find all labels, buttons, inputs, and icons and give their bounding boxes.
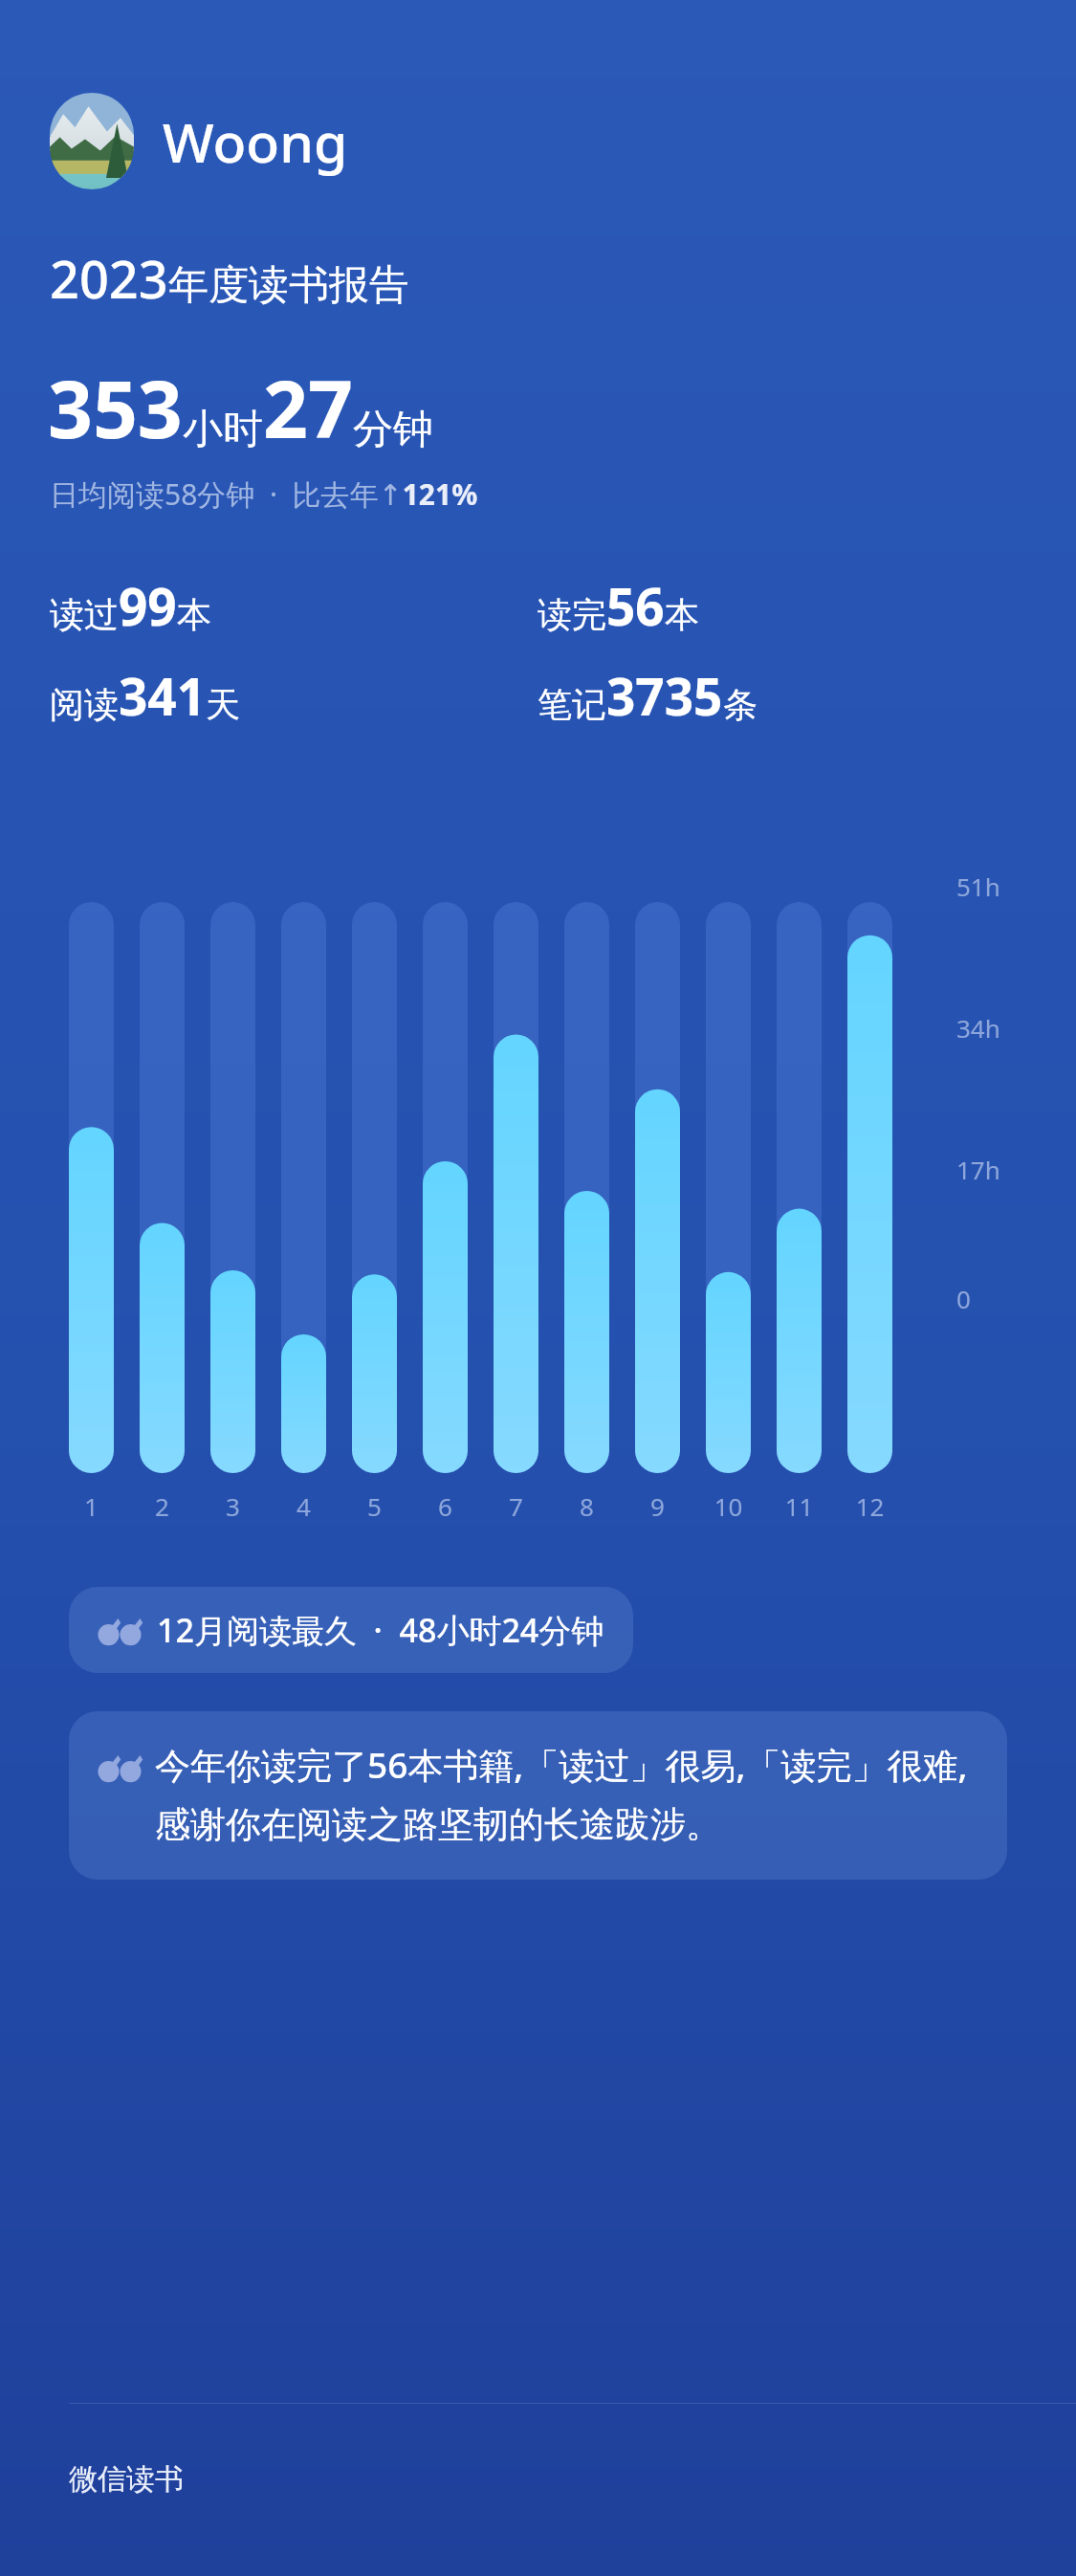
button[interactable]: 今年你读完了56本书籍,「读过」很易,「读完」很难,感谢你在阅读之路坚韧的长途跋… — [69, 1711, 1007, 1880]
staticText: 今年你读完了56本书籍,「读过」很易,「读完」很难,感谢你在阅读之路坚韧的长途跋… — [155, 1740, 984, 1847]
staticText: 3735 — [606, 661, 723, 730]
staticText: 微信读书 — [69, 2461, 184, 2498]
staticText: 99 — [119, 571, 177, 640]
button[interactable]: Profile photo — [50, 93, 348, 189]
staticText: 27 — [263, 354, 353, 461]
staticText: 12月阅读最久 · 48小时24分钟 — [157, 1608, 604, 1652]
staticText: 3 — [210, 1489, 255, 1523]
staticText: 笔记 — [538, 683, 606, 726]
button[interactable]: 读完 — [538, 571, 699, 640]
staticText: 353 — [48, 354, 183, 461]
staticText: 9 — [635, 1489, 680, 1523]
staticText: 本 — [665, 593, 699, 636]
button[interactable]: 阅读 — [50, 661, 240, 730]
button[interactable]: 12月阅读最久 · 48小时24分钟 — [69, 1587, 633, 1673]
staticText: 56 — [606, 571, 665, 640]
staticText: 小时 — [183, 405, 263, 455]
staticText: 2 — [140, 1489, 185, 1523]
staticText: 341 — [119, 661, 206, 730]
staticText: 6 — [423, 1489, 468, 1523]
staticText: 17h — [956, 1153, 1000, 1186]
staticText: 4 — [281, 1489, 326, 1523]
staticText: 本 — [177, 593, 211, 636]
button[interactable]: 笔记 — [538, 661, 758, 730]
staticText: 2023 — [50, 243, 168, 314]
staticText: 年度读书报告 — [168, 260, 409, 311]
staticText: 1 — [69, 1489, 114, 1523]
staticText: 51h — [956, 870, 1000, 903]
other: Profile photo — [50, 93, 134, 189]
staticText: 天 — [206, 683, 240, 726]
staticText: 分钟 — [353, 405, 433, 455]
staticText: 条 — [723, 683, 758, 726]
staticText: Woong — [163, 104, 348, 179]
staticText: 读完 — [538, 593, 606, 636]
staticText: 11 — [777, 1489, 822, 1523]
staticText: 7 — [494, 1489, 538, 1523]
button[interactable]: 读过 — [50, 571, 211, 640]
staticText: 读过 — [50, 593, 119, 636]
staticText: 34h — [956, 1011, 1000, 1045]
staticText: 0 — [956, 1282, 971, 1315]
staticText: 10 — [706, 1489, 751, 1523]
staticText: 日均阅读58分钟 · 比去年↑121% — [50, 474, 478, 514]
staticText: 12 — [847, 1489, 892, 1523]
staticText: 5 — [352, 1489, 397, 1523]
staticText: 阅读 — [50, 683, 119, 726]
staticText: 8 — [564, 1489, 609, 1523]
